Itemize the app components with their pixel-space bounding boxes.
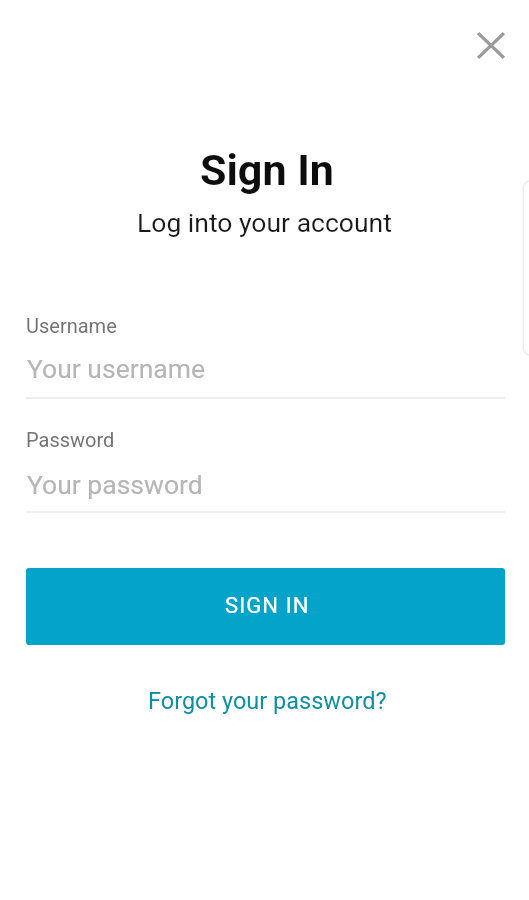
staticText: Forgot your password? [148, 687, 387, 715]
staticText: Sign In [200, 145, 334, 195]
button[interactable]: Password [26, 428, 505, 518]
staticText: Username [26, 314, 117, 337]
button[interactable]: SIGN IN [26, 568, 505, 645]
staticText: Password [26, 428, 115, 451]
button[interactable]: Forgot your password? [135, 675, 399, 723]
staticText: SIGN IN [225, 593, 310, 619]
button[interactable]: Username [26, 314, 505, 404]
button[interactable]: Close [467, 21, 515, 69]
staticText: Your password [27, 469, 203, 500]
staticText: Your username [27, 353, 206, 384]
staticText: Log into your account [137, 207, 392, 238]
